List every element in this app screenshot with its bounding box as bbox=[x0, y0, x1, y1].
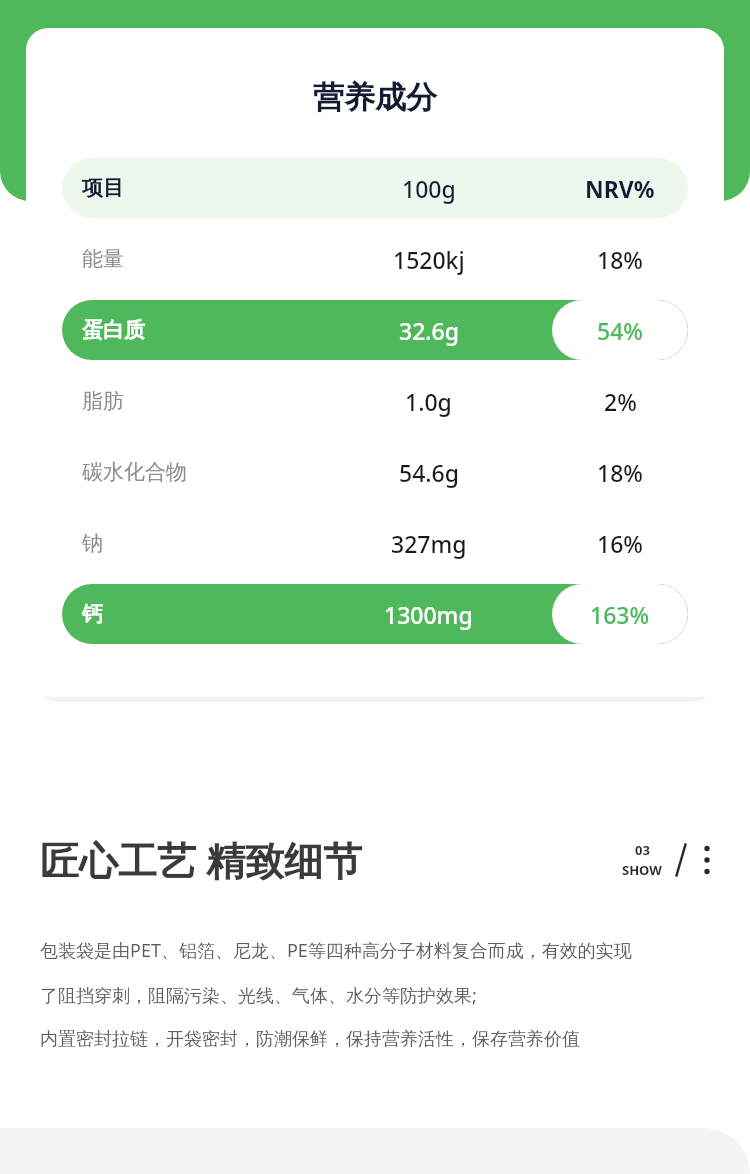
button[interactable]: Section 03 SHOW, more options bbox=[620, 835, 714, 885]
staticText: 内置密封拉链，开袋密封，防潮保鲜，保持营养活性，保存营养价值 bbox=[40, 1028, 580, 1051]
button[interactable]: 蛋白质 bbox=[62, 300, 688, 360]
staticText: 钠 bbox=[82, 530, 103, 556]
button[interactable]: 能量 bbox=[62, 229, 688, 289]
staticText: 匠心工艺 精致细节 bbox=[40, 833, 363, 886]
button[interactable]: 脂肪 bbox=[62, 371, 688, 431]
staticText: 2% bbox=[604, 386, 637, 417]
staticText: 碳水化合物 bbox=[82, 459, 187, 485]
staticText: 营养成分 bbox=[26, 78, 724, 117]
staticText: 项目 bbox=[82, 175, 124, 201]
button[interactable]: 项目 bbox=[62, 158, 688, 218]
button[interactable]: 钙 bbox=[62, 584, 688, 644]
staticText: 钙 bbox=[82, 601, 103, 627]
staticText: 1.0g bbox=[405, 386, 452, 417]
staticText: NRV% bbox=[585, 173, 655, 204]
staticText: 16% bbox=[597, 528, 643, 559]
staticText: 03 bbox=[635, 841, 650, 859]
staticText: 蛋白质 bbox=[82, 317, 145, 343]
staticText: 327mg bbox=[391, 528, 467, 559]
staticText: 54.6g bbox=[399, 457, 459, 488]
staticText: 54% bbox=[597, 315, 643, 346]
button[interactable]: 碳水化合物 bbox=[62, 442, 688, 502]
staticText: 包装袋是由PET、铝箔、尼龙、PE等四种高分子材料复合而成，有效的实现 bbox=[40, 938, 632, 963]
staticText: 32.6g bbox=[399, 315, 459, 346]
staticText: 100g bbox=[402, 173, 456, 204]
staticText: 1300mg bbox=[384, 599, 473, 630]
staticText: 18% bbox=[597, 457, 643, 488]
button[interactable]: 钠 bbox=[62, 513, 688, 573]
staticText: 18% bbox=[597, 244, 643, 275]
staticText: 163% bbox=[590, 599, 650, 630]
staticText: 了阻挡穿刺，阻隔污染、光线、气体、水分等防护效果; bbox=[40, 983, 477, 1008]
staticText: 能量 bbox=[82, 246, 124, 272]
staticText: SHOW bbox=[622, 861, 662, 879]
staticText: 脂肪 bbox=[82, 388, 124, 414]
staticText: 1520kj bbox=[393, 244, 465, 275]
